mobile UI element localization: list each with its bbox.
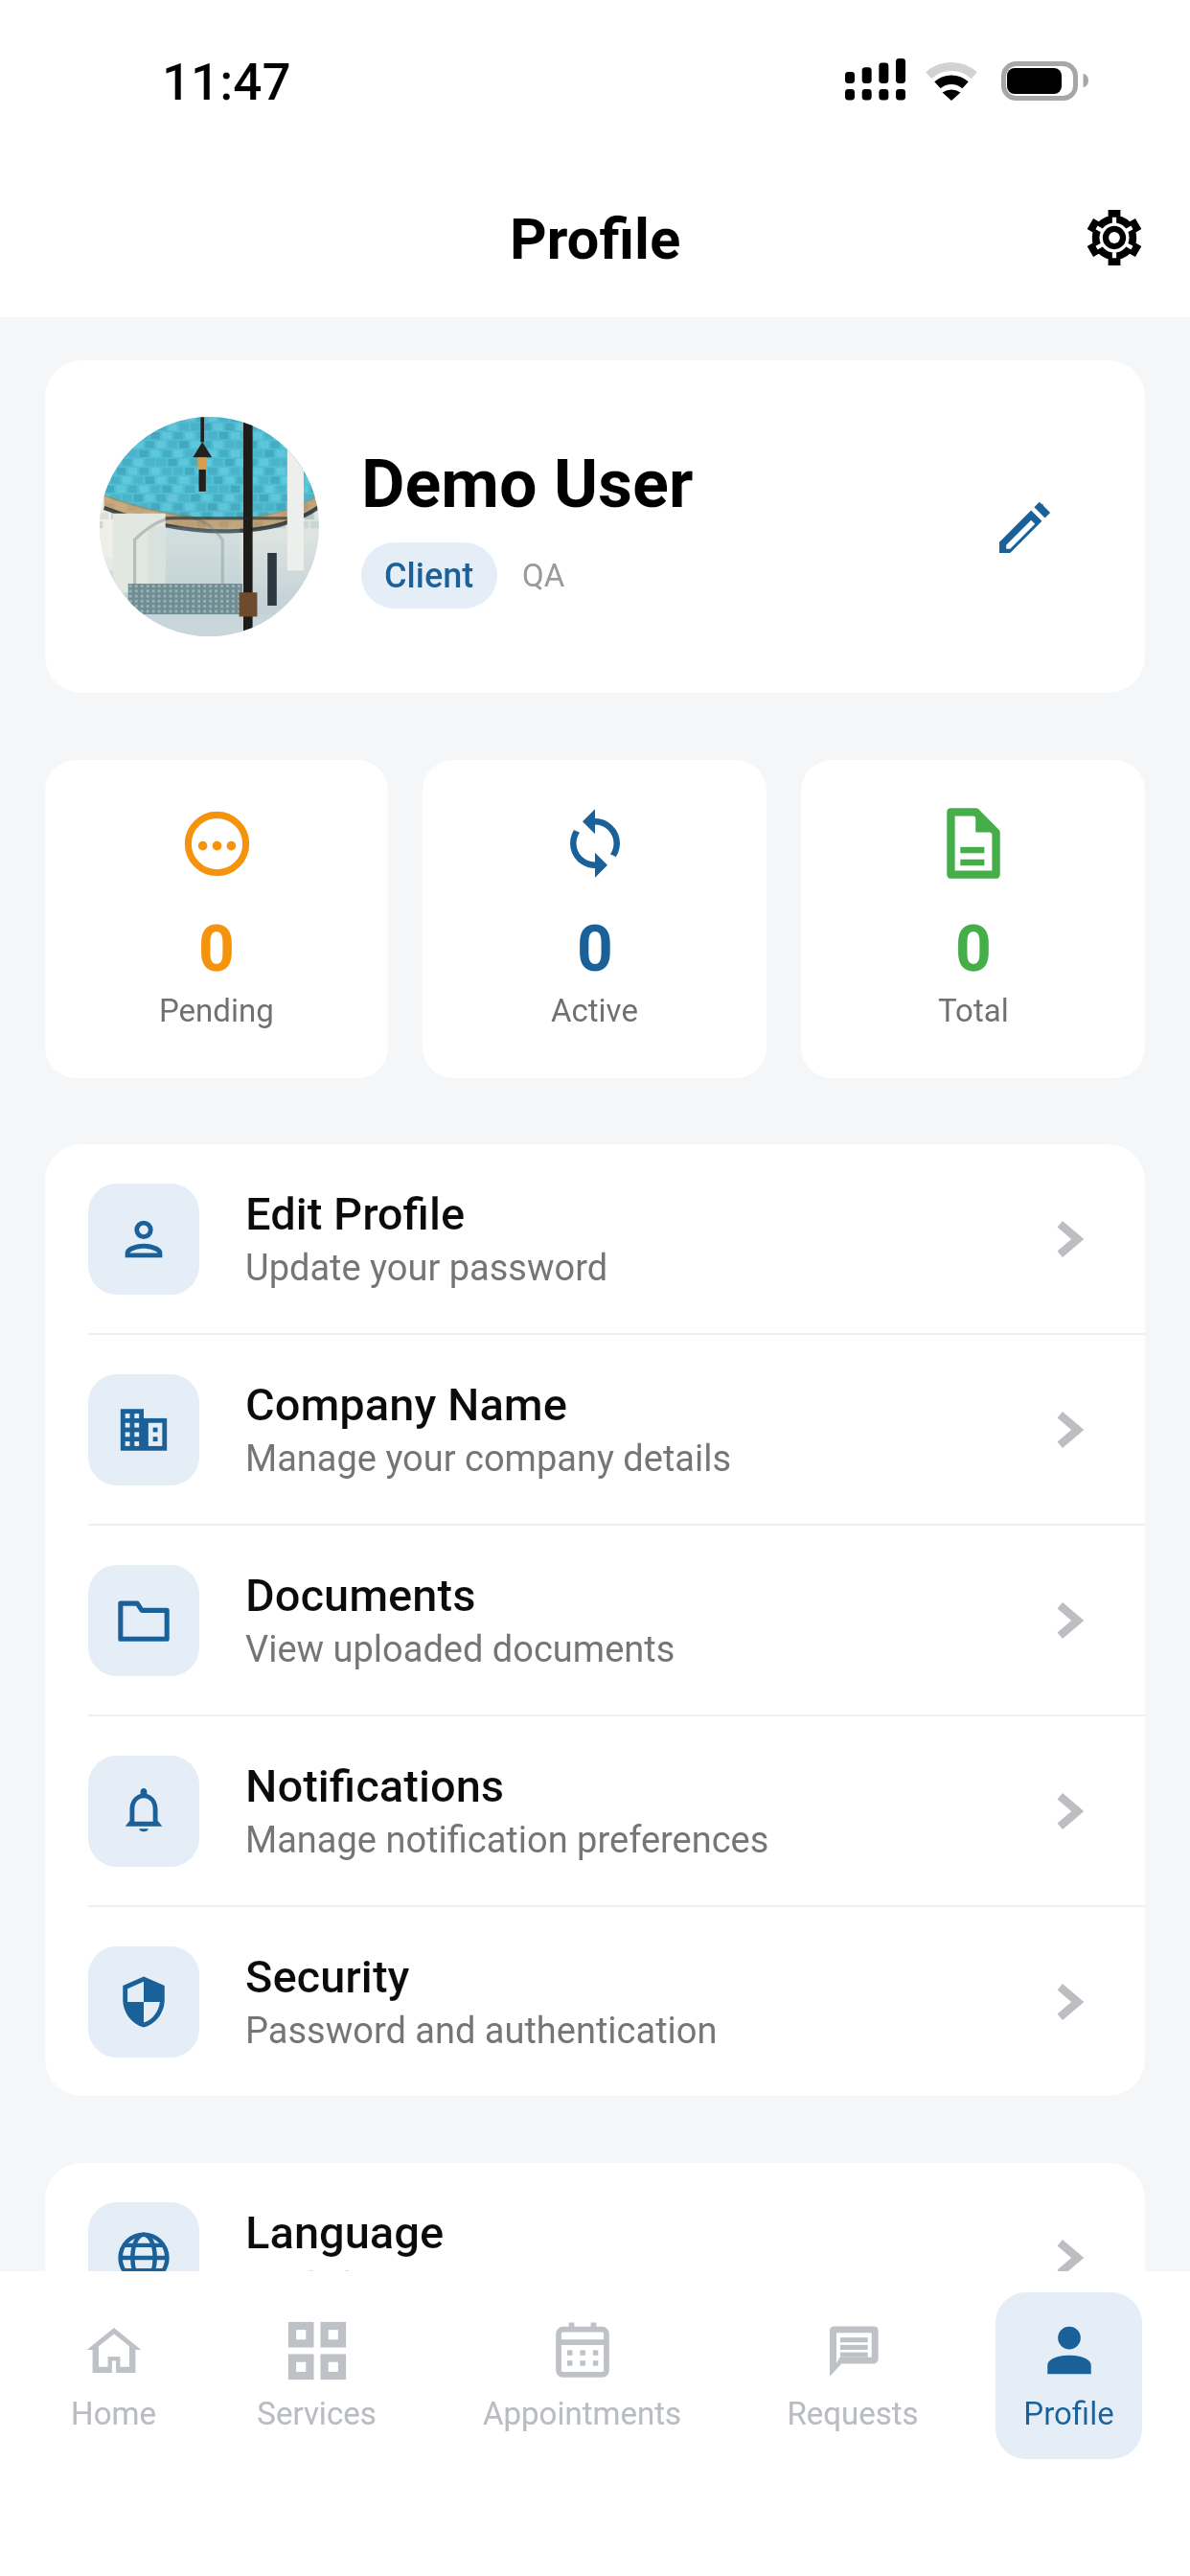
- button[interactable]: Company Name: [45, 1335, 1145, 1524]
- staticText: Profile: [510, 205, 681, 272]
- staticText: Manage notification preferences: [245, 1819, 769, 1862]
- button[interactable]: 0: [801, 760, 1145, 1078]
- button[interactable]: 0: [423, 760, 767, 1078]
- button[interactable]: Documents: [45, 1526, 1145, 1714]
- staticText: Demo User: [361, 445, 694, 523]
- staticText: Requests: [787, 2395, 919, 2432]
- staticText: Home: [71, 2395, 156, 2432]
- staticText: Update your password: [245, 1247, 608, 1290]
- staticText: Edit Profile: [245, 1187, 466, 1240]
- staticText: Appointments: [483, 2395, 681, 2432]
- staticText: Password and authentication: [245, 2010, 718, 2053]
- staticText: Security: [245, 1950, 410, 2003]
- staticText: Active: [551, 992, 638, 1029]
- staticText: 0: [955, 912, 992, 986]
- button[interactable]: 0: [45, 760, 388, 1078]
- button[interactable]: Notifications: [45, 1716, 1145, 1905]
- button[interactable]: Home: [57, 2292, 170, 2459]
- button[interactable]: Profile: [995, 2292, 1142, 2459]
- staticText: Client: [384, 556, 474, 596]
- button[interactable]: Demo User: [45, 360, 1145, 693]
- staticText: Profile: [1023, 2395, 1114, 2432]
- button[interactable]: Services: [243, 2292, 390, 2459]
- staticText: Company Name: [245, 1378, 567, 1431]
- staticText: 0: [577, 912, 613, 986]
- button[interactable]: Requests: [773, 2292, 932, 2459]
- staticText: Documents: [245, 1569, 476, 1621]
- button[interactable]: Settings: [1078, 201, 1151, 274]
- staticText: 11:47: [162, 53, 291, 112]
- staticText: Services: [257, 2395, 377, 2432]
- staticText: QA: [522, 557, 565, 594]
- staticText: Total: [938, 992, 1009, 1029]
- button[interactable]: Edit profile: [979, 481, 1071, 573]
- button[interactable]: Appointments: [469, 2292, 695, 2459]
- staticText: Manage your company details: [245, 1437, 732, 1481]
- button[interactable]: Security: [45, 1907, 1145, 2096]
- staticText: Notifications: [245, 1759, 505, 1812]
- staticText: Language: [245, 2206, 445, 2259]
- button[interactable]: Edit Profile: [45, 1144, 1145, 1333]
- staticText: View uploaded documents: [245, 1628, 675, 1671]
- staticText: 0: [198, 912, 235, 986]
- staticText: Pending: [159, 992, 274, 1029]
- button[interactable]: Language: [45, 2163, 1145, 2271]
